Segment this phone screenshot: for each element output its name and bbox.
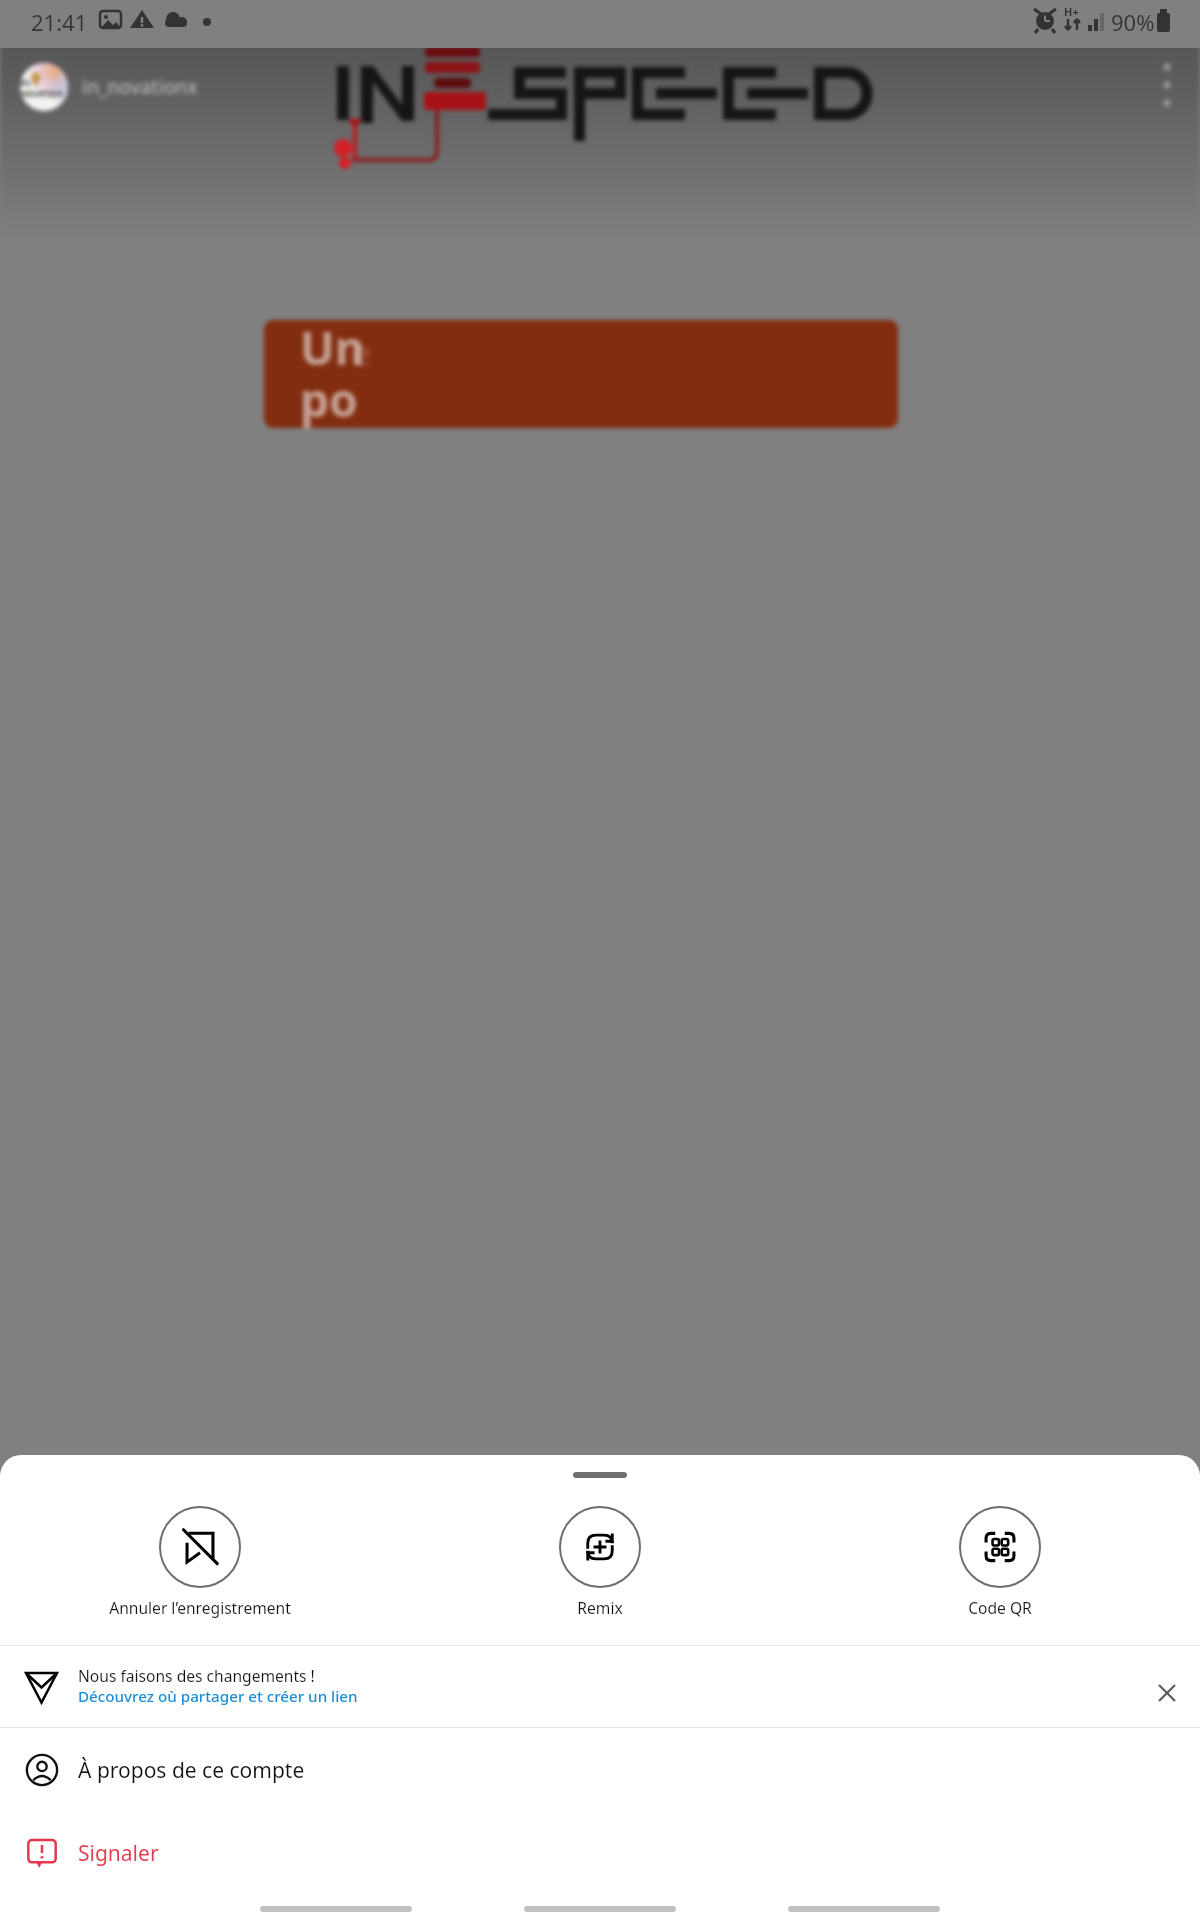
staticText: IN-NOVATION — [20, 77, 68, 99]
button[interactable]: Annuler l’enregistrement — [67, 1479, 333, 1639]
staticText: e — [350, 328, 372, 377]
staticText: po — [300, 368, 358, 428]
staticText: in_novationx — [82, 74, 198, 100]
button[interactable]: Plus d’options — [1140, 58, 1194, 112]
button[interactable]: Signaler — [0, 1812, 1200, 1894]
staticText: Découvrez où partager et créer un lien — [78, 1686, 358, 1707]
staticText: H+ — [1064, 4, 1079, 19]
staticText: Signaler — [78, 1839, 159, 1868]
staticText: Code QR — [968, 1597, 1032, 1618]
staticText: À propos de ce compte — [78, 1756, 305, 1785]
staticText: 21:41 — [31, 7, 88, 37]
button[interactable]: Code QR — [867, 1479, 1133, 1639]
button[interactable]: Nous faisons des changements ! — [0, 1646, 1200, 1727]
button[interactable]: À propos de ce compte — [0, 1729, 1200, 1811]
staticText: Remix — [577, 1597, 623, 1618]
staticText: Un — [300, 320, 365, 379]
staticText: 90% — [1111, 7, 1155, 37]
staticText: Nous faisons des changements ! — [78, 1665, 315, 1686]
button[interactable]: Remix — [467, 1479, 733, 1639]
staticText: Annuler l’enregistrement — [109, 1597, 291, 1618]
button[interactable]: Fermer — [1141, 1667, 1193, 1719]
